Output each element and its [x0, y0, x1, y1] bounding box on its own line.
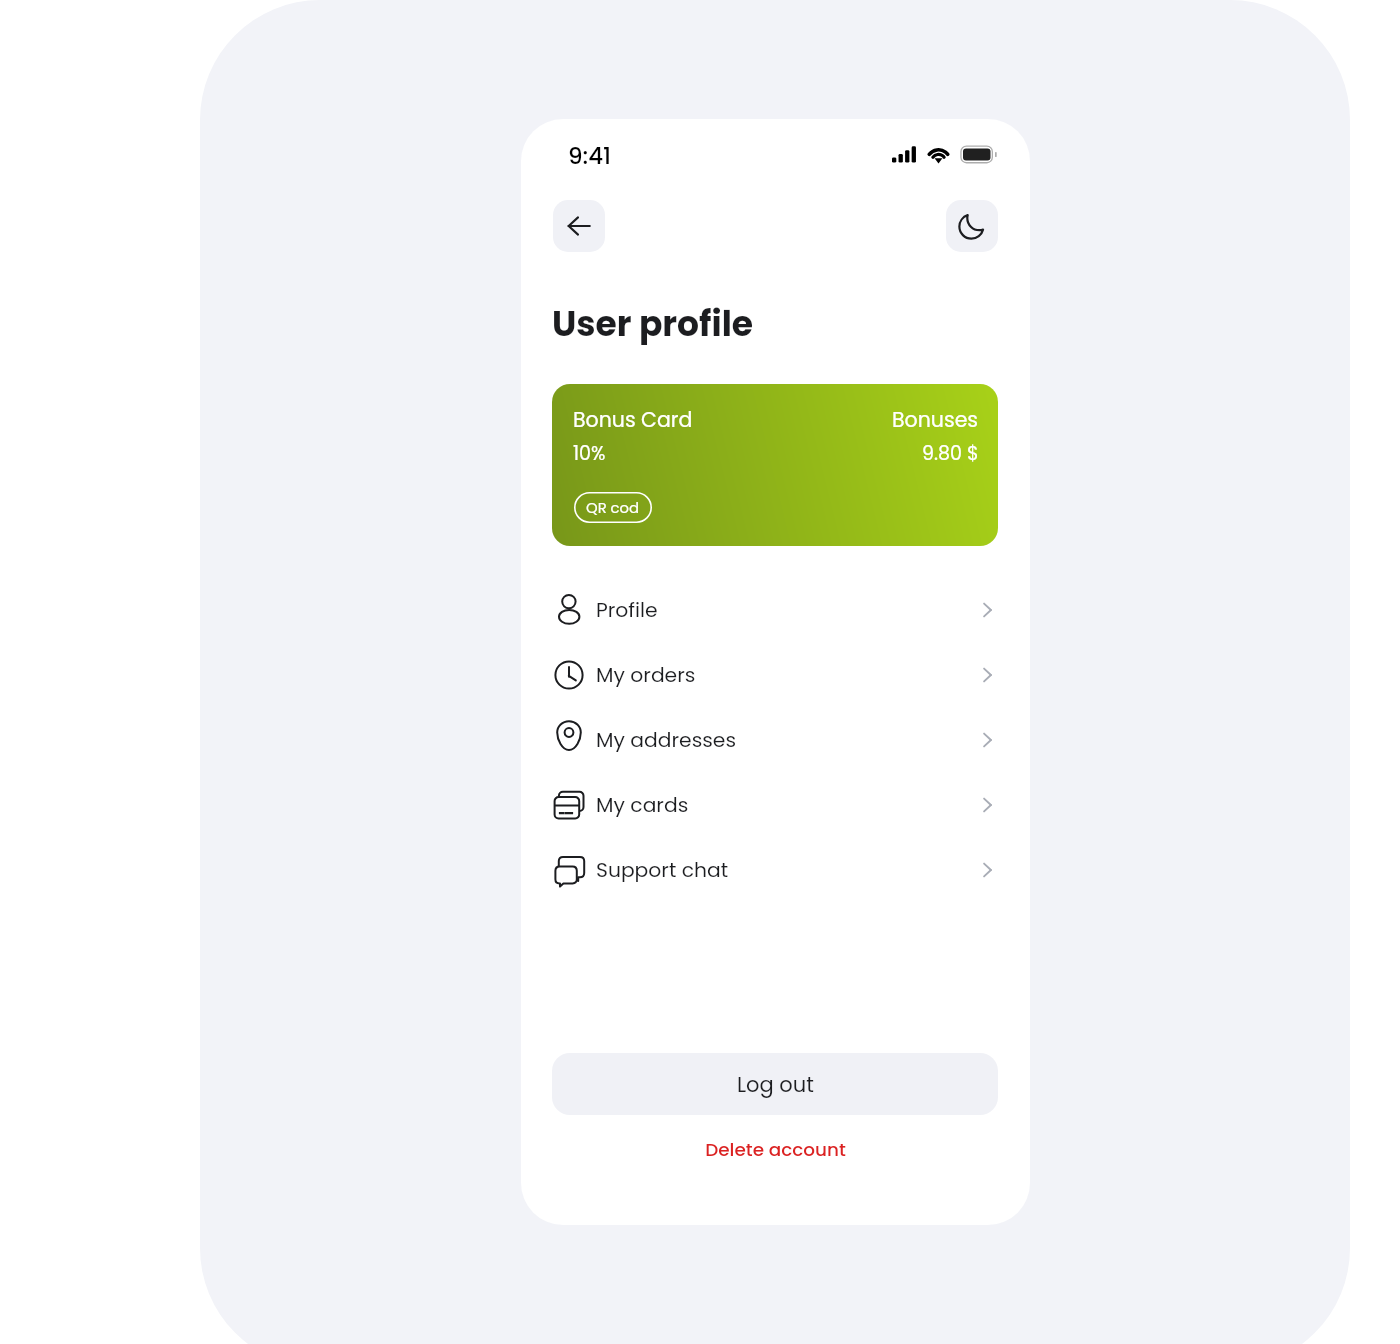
staticText: 9:41	[568, 140, 612, 172]
staticText: Bonus Card	[573, 405, 693, 434]
staticText: My addresses	[596, 726, 737, 754]
staticText: Support chat	[596, 856, 729, 884]
staticText: User profile	[552, 300, 754, 348]
staticText: 10%	[573, 440, 606, 467]
button[interactable]: Back	[553, 200, 605, 252]
staticText: 9.80 $	[922, 440, 979, 467]
button[interactable]: My addresses	[521, 707, 1030, 772]
staticText: Bonuses	[892, 405, 979, 434]
button[interactable]: QR cod	[574, 492, 652, 523]
staticText: My orders	[596, 661, 696, 689]
staticText: My cards	[596, 791, 689, 819]
button[interactable]: Dark mode	[946, 200, 998, 252]
button[interactable]: My orders	[521, 642, 1030, 707]
button[interactable]: Bonus Card	[552, 384, 998, 546]
button[interactable]: Support chat	[521, 837, 1030, 902]
staticText: Delete account	[705, 1137, 846, 1163]
staticText: QR cod	[586, 497, 640, 518]
button[interactable]: Log out	[552, 1053, 998, 1115]
button[interactable]: My cards	[521, 772, 1030, 837]
staticText: Log out	[737, 1070, 814, 1099]
button[interactable]: Delete account	[521, 1128, 1030, 1172]
button[interactable]: Profile	[521, 577, 1030, 642]
staticText: Profile	[596, 596, 658, 624]
